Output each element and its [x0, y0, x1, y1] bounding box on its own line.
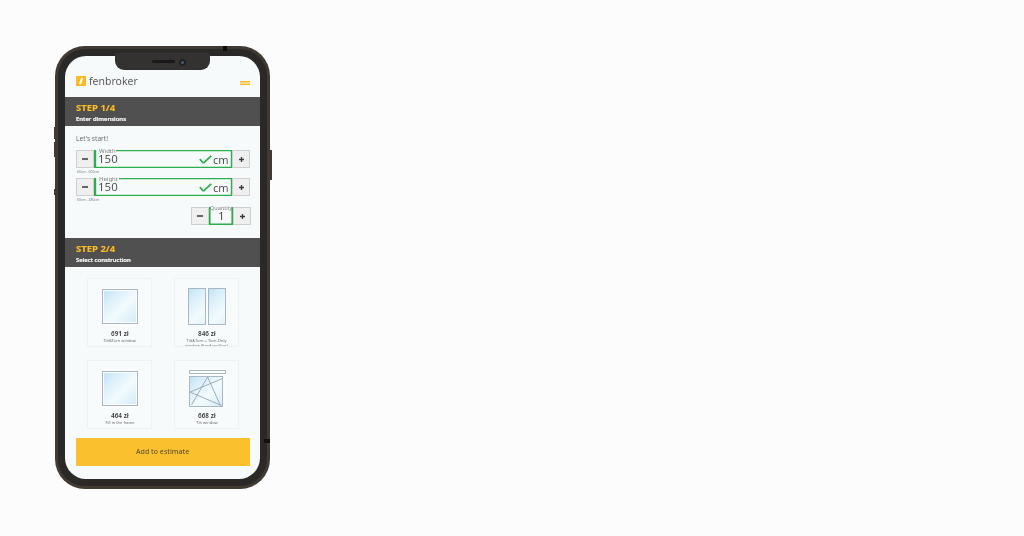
button[interactable]: 668 zł [174, 360, 239, 429]
staticText: cm [213, 152, 229, 167]
staticText: Height [99, 175, 118, 183]
staticText: Tilt window [196, 420, 218, 425]
button[interactable]: 1 [209, 207, 233, 225]
button[interactable]: 846 zł [174, 278, 239, 347]
staticText: Tilt&Turn + Turn-Only window (fixed mull… [185, 338, 228, 348]
button[interactable]: Decrease [191, 207, 209, 225]
staticText: 691 zł [111, 329, 129, 338]
staticText: Let's start! [76, 134, 108, 143]
button[interactable]: 691 zł [87, 278, 152, 347]
staticText: 846 zł [198, 329, 216, 338]
staticText: Tilt&Turn window [103, 338, 136, 343]
button[interactable]: 464 zł [87, 360, 152, 429]
staticText: cm [213, 180, 229, 195]
staticText: Add to estimate [136, 447, 190, 457]
button[interactable]: 150 [94, 150, 232, 168]
staticText: STEP 1/4 [76, 101, 116, 114]
button[interactable]: Add to estimate [76, 438, 250, 466]
button[interactable]: Open menu [236, 76, 254, 90]
staticText: Width [99, 147, 116, 155]
staticText: 60cm - 600cm [77, 169, 100, 174]
staticText: fenbroker [89, 74, 138, 88]
button[interactable]: Increase [232, 178, 250, 196]
staticText: Select construction [76, 256, 131, 264]
staticText: Quantity [210, 204, 233, 211]
staticText: 464 zł [111, 411, 129, 420]
button[interactable]: Decrease [76, 178, 94, 196]
staticText: 150 [98, 151, 118, 167]
button[interactable]: Increase [233, 207, 251, 225]
staticText: 1 [218, 208, 225, 224]
staticText: 668 zł [198, 411, 216, 420]
staticText: 150 [98, 179, 118, 195]
staticText: Enter dimensions [76, 115, 127, 123]
button[interactable]: Increase [232, 150, 250, 168]
button[interactable]: 150 [94, 178, 232, 196]
staticText: Fill in the frame [105, 420, 135, 425]
button[interactable]: fenbroker [76, 74, 138, 88]
staticText: 60cm - 280cm [77, 197, 100, 202]
button[interactable]: Decrease [76, 150, 94, 168]
staticText: STEP 2/4 [76, 242, 116, 255]
